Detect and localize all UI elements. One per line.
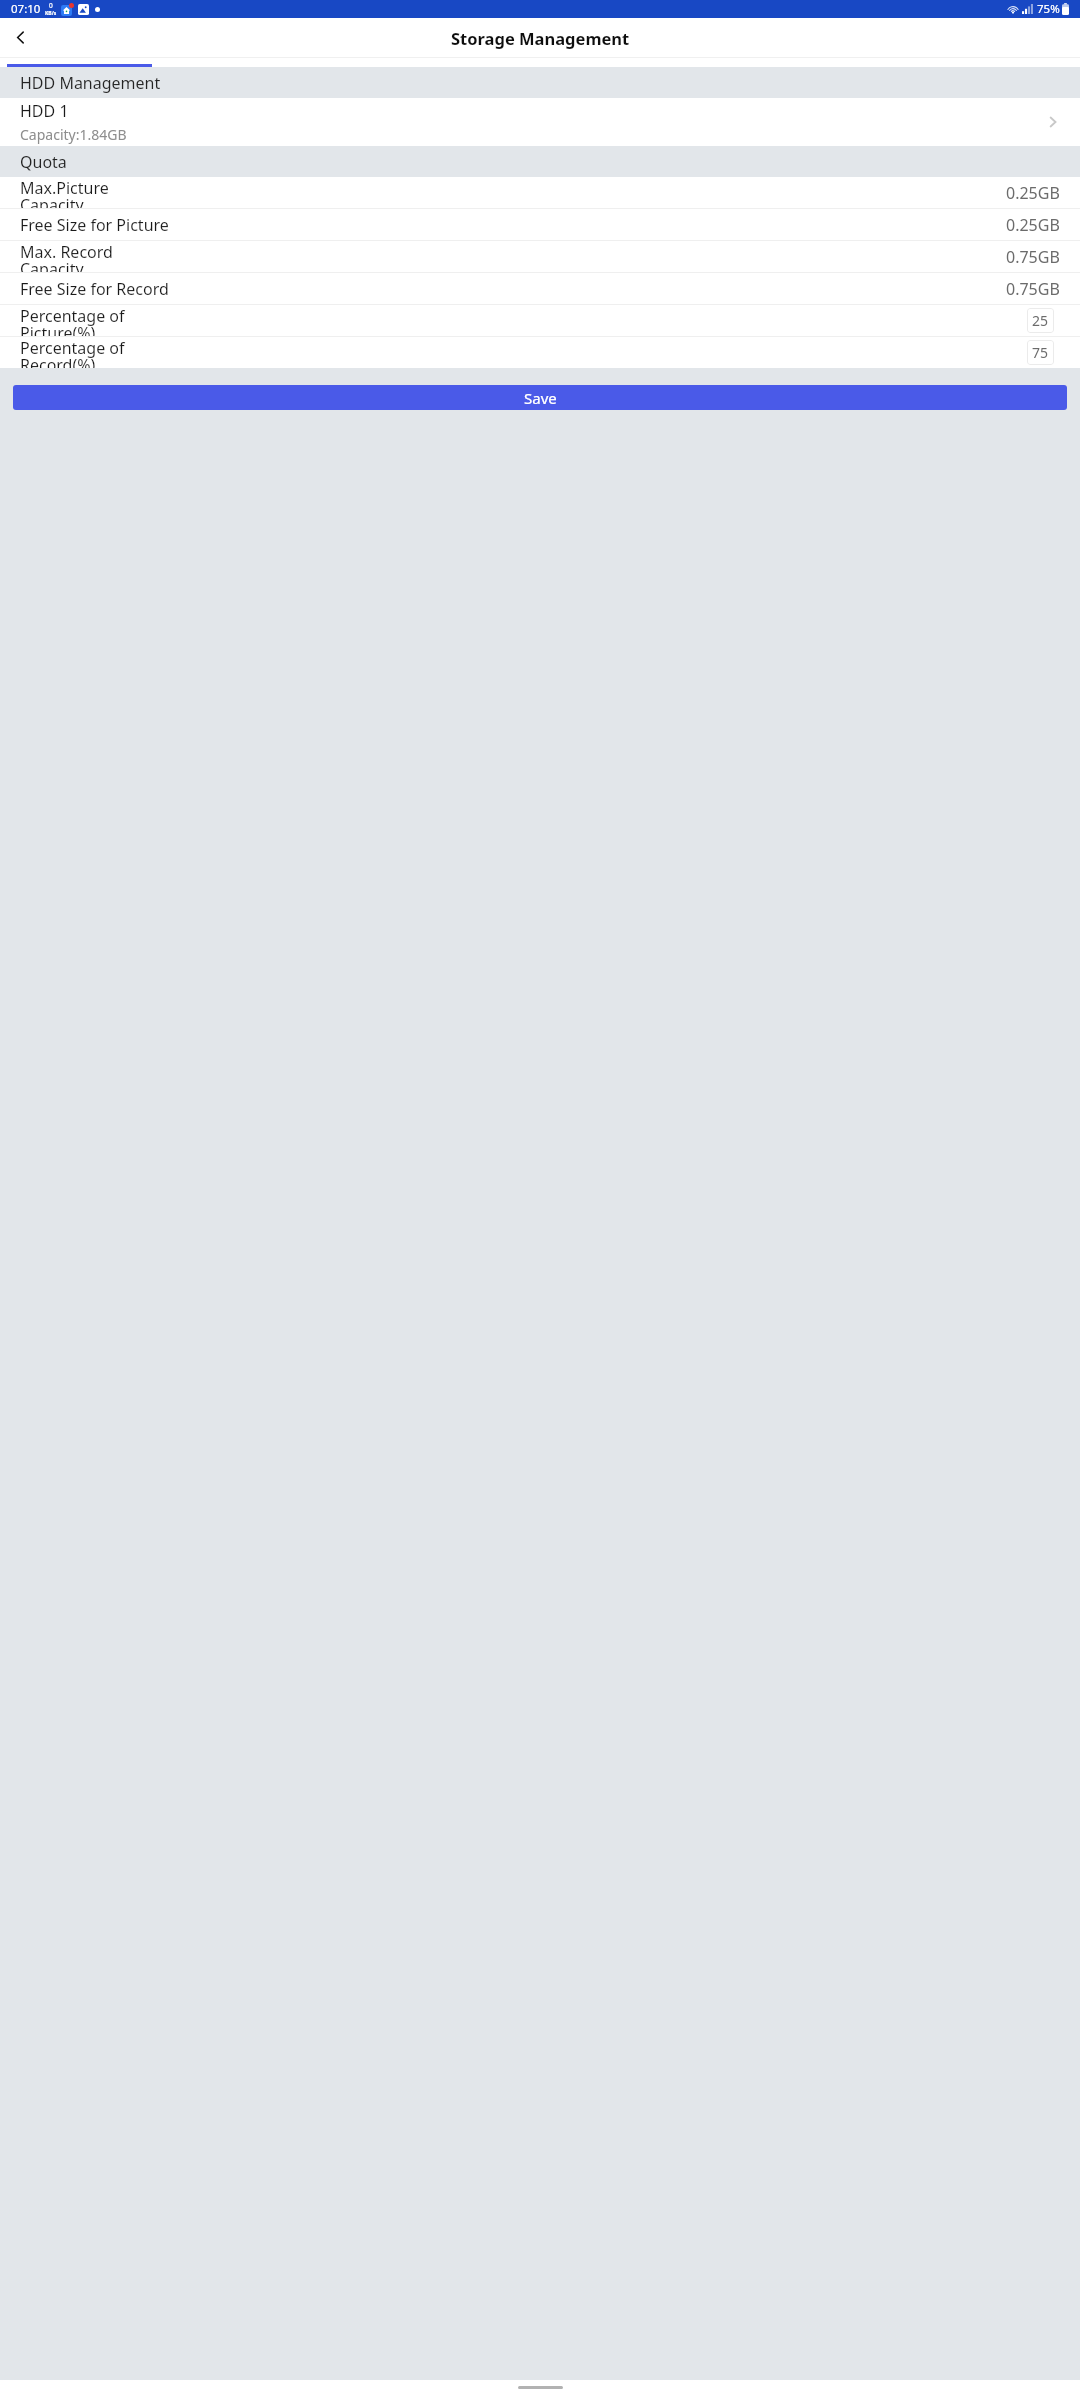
staticText: 25	[1032, 311, 1049, 330]
staticText: Percentage of Picture(%)	[20, 305, 1027, 336]
staticText: Free Size for Picture	[20, 214, 1006, 236]
button[interactable]: Max.Picture Capacity	[0, 177, 1080, 208]
staticText: Max.Picture Capacity	[20, 177, 1006, 208]
button[interactable]: Save	[13, 385, 1067, 410]
staticText: 0	[49, 1, 53, 10]
staticText: Quota	[20, 151, 67, 173]
staticText: Save	[524, 388, 557, 408]
button[interactable]: 25	[1027, 308, 1054, 333]
staticText: 75	[1032, 343, 1049, 362]
staticText: 0.75GB	[1006, 246, 1060, 268]
staticText: 07:10	[11, 1, 41, 17]
staticText: 0.75GB	[1006, 278, 1060, 300]
staticText: 0.25GB	[1006, 182, 1060, 204]
staticText: Max. Record Capacity	[20, 241, 1006, 272]
staticText: Capacity:1.84GB	[20, 125, 127, 144]
staticText: 75%	[1037, 1, 1060, 17]
staticText: HDD 1	[20, 100, 69, 122]
staticText: Percentage of Record(%)	[20, 337, 1027, 368]
button[interactable]: HDD 1	[0, 98, 1080, 146]
button[interactable]: Back	[0, 18, 40, 57]
button[interactable]: 75	[1027, 340, 1054, 365]
staticText: Storage Management	[451, 27, 630, 49]
button[interactable]: Max. Record Capacity	[0, 241, 1080, 272]
button[interactable]: Free Size for Record	[0, 273, 1080, 304]
staticText: Free Size for Record	[20, 278, 1006, 300]
staticText: 0.25GB	[1006, 214, 1060, 236]
staticText: HDD Management	[20, 72, 161, 94]
staticText: KB/s	[45, 10, 57, 17]
button[interactable]: Free Size for Picture	[0, 209, 1080, 240]
